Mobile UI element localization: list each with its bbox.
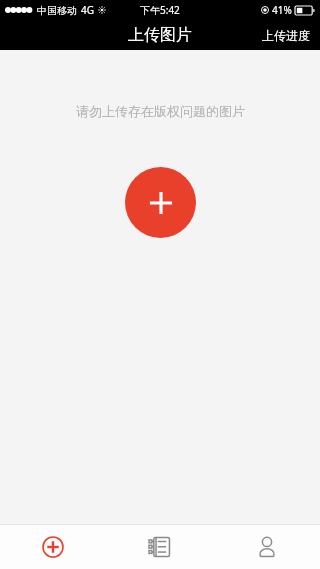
staticText: 上传进度: [262, 28, 310, 43]
staticText: 请勿上传存在版权问题的图片: [76, 103, 245, 119]
button[interactable]: 上传进度: [252, 20, 320, 50]
staticText: 41%: [272, 3, 292, 17]
button[interactable]: Profile: [213, 525, 320, 569]
staticText: 4G: [81, 3, 94, 17]
staticText: 下午5:42: [140, 3, 180, 17]
staticText: 中国移动: [37, 4, 77, 17]
button[interactable]: Add upload: [0, 525, 106, 569]
button[interactable]: [125, 167, 196, 238]
button[interactable]: List: [106, 525, 213, 569]
staticText: 上传图片: [128, 25, 192, 45]
